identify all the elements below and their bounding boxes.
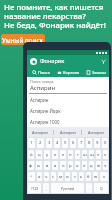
staticText: x (103, 174, 106, 179)
button[interactable]: Аспирин (54, 127, 81, 137)
button[interactable]: 5 (62, 138, 68, 148)
staticText: р (69, 163, 72, 169)
button[interactable]: з (96, 150, 101, 159)
staticText: 7 (80, 140, 83, 146)
button[interactable]: л (82, 161, 87, 170)
staticText: 4 (56, 140, 59, 146)
button[interactable]: е (60, 150, 66, 159)
button[interactable]: ж (96, 161, 101, 170)
button[interactable]: п (60, 161, 66, 170)
button[interactable]: 1 (28, 138, 35, 148)
button[interactable]: . (86, 183, 92, 193)
button[interactable]: н (68, 150, 73, 159)
button[interactable]: и (65, 172, 70, 181)
staticText: а (54, 163, 57, 169)
button[interactable]: т (72, 172, 77, 181)
button[interactable]: г (75, 150, 80, 159)
staticText: 6 (72, 140, 75, 146)
staticText: п (62, 163, 65, 169)
button[interactable]: к (52, 150, 58, 159)
staticText: ы (37, 163, 41, 169)
button[interactable]: ?123 (28, 183, 41, 193)
staticText: ч (45, 174, 48, 180)
button[interactable]: в (44, 161, 50, 170)
staticText: м (59, 174, 63, 180)
staticText: Поиск товара (30, 79, 54, 84)
button[interactable]: ы (36, 161, 42, 170)
staticText: 5 (64, 140, 67, 146)
staticText: н (69, 152, 72, 158)
button[interactable]: ^ (28, 172, 35, 181)
staticText: й (30, 152, 33, 158)
button[interactable]: 8 (86, 138, 92, 148)
staticText: щ (90, 152, 94, 158)
staticText: т (74, 174, 76, 180)
staticText: ю (94, 174, 98, 180)
button[interactable]: м (58, 172, 63, 181)
button[interactable]: р (68, 161, 73, 170)
button[interactable]: Menu (30, 58, 37, 65)
staticText: и (66, 174, 69, 180)
staticText: Аспирин Йорк (30, 108, 61, 114)
staticText: у (46, 152, 49, 158)
staticText: д (90, 163, 93, 169)
button[interactable]: с (51, 172, 56, 181)
button[interactable]: Аспирин (27, 127, 53, 137)
staticText: Аспирин 1000 (30, 119, 60, 125)
staticText: с (52, 174, 55, 180)
button[interactable]: б (86, 172, 91, 181)
button[interactable]: 3 (46, 138, 52, 148)
staticText: Аспирин (32, 130, 48, 135)
button[interactable]: ш (82, 150, 87, 159)
button[interactable]: х (103, 150, 108, 159)
button[interactable]: ф (28, 161, 34, 170)
staticText: к (54, 152, 57, 158)
staticText: Аспирин (30, 84, 56, 92)
button[interactable]: э (103, 161, 108, 170)
button[interactable]: ю (93, 172, 98, 181)
button[interactable]: й (28, 150, 34, 159)
staticText: в (46, 163, 49, 169)
button[interactable]: Русский (51, 183, 84, 193)
staticText: е (62, 152, 65, 158)
button[interactable]: а (52, 161, 58, 170)
button[interactable]: о (75, 161, 80, 170)
staticText: ф (29, 163, 33, 169)
button[interactable]: Аспирин 1000 (27, 116, 109, 127)
staticText: , (46, 186, 47, 191)
button[interactable]: Корзина (55, 67, 82, 77)
staticText: . (89, 186, 90, 191)
button[interactable]: ч (44, 172, 49, 181)
staticText: з (97, 152, 100, 158)
button[interactable]: у (44, 150, 50, 159)
button[interactable]: x (100, 172, 108, 181)
button[interactable]: Умный поиск (1, 34, 45, 45)
button[interactable]: 2 (37, 138, 44, 148)
button[interactable]: Аспирин (82, 127, 109, 137)
staticText: о (76, 163, 79, 169)
staticText: Аспирин (60, 130, 76, 135)
button[interactable]: 4 (54, 138, 60, 148)
button[interactable]: Q (94, 183, 108, 193)
staticText: 0 (104, 140, 107, 146)
button[interactable]: 7 (78, 138, 84, 148)
button[interactable]: 9 (94, 138, 100, 148)
button[interactable]: 6 (70, 138, 76, 148)
button[interactable]: Filter (100, 58, 107, 65)
staticText: я (38, 174, 41, 180)
button[interactable]: 0 (102, 138, 108, 148)
button[interactable]: , (43, 183, 49, 193)
button[interactable]: ь (79, 172, 84, 181)
button[interactable]: ц (36, 150, 42, 159)
button[interactable]: Поиск (27, 67, 55, 77)
staticText: ц (38, 152, 41, 158)
button[interactable]: Аспирин Йорк (27, 105, 109, 116)
staticText: Фонарик (40, 57, 65, 65)
button[interactable]: Заказы (82, 67, 109, 77)
button[interactable]: д (89, 161, 94, 170)
button[interactable]: я (37, 172, 42, 181)
staticText: ?123 (31, 186, 39, 191)
button[interactable]: щ (89, 150, 94, 159)
staticText: э (104, 163, 107, 169)
button[interactable]: Аспирин (27, 94, 109, 105)
